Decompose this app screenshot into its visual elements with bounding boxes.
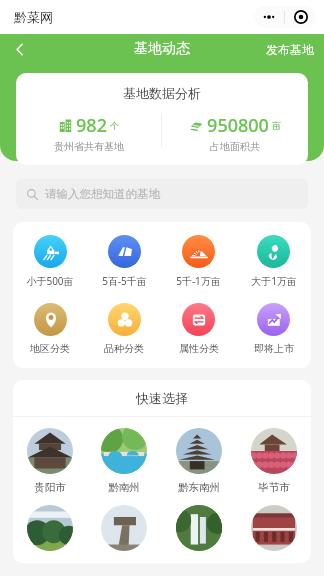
staticText: 贵阳市 <box>34 481 66 494</box>
staticText: 即将上市 <box>254 342 294 355</box>
staticText: 占地面积共 <box>210 140 260 153</box>
button[interactable]: 黔南州 <box>87 428 161 494</box>
button[interactable]: 5千-1万亩 <box>161 235 236 288</box>
staticText: 黔南州 <box>108 481 140 494</box>
staticText: 属性分类 <box>179 342 219 355</box>
button[interactable]: 贵阳市 <box>13 428 87 494</box>
staticText: 950800 <box>207 113 269 138</box>
staticText: 基地数据分析 <box>123 85 201 101</box>
staticText: 发布基地 <box>266 42 314 57</box>
staticText: 地区分类 <box>30 342 70 355</box>
button[interactable]: More options <box>254 6 284 28</box>
button[interactable]: 黔东南州 <box>161 428 236 494</box>
button[interactable]: Close <box>285 6 316 28</box>
staticText: 基地动态 <box>134 40 190 58</box>
button[interactable]: 发布基地 <box>266 42 314 57</box>
button[interactable]: 大于1万亩 <box>236 235 311 288</box>
staticText: 个 <box>110 120 119 131</box>
staticText: 小于500亩 <box>26 274 74 288</box>
button[interactable]: 地区分类 <box>13 303 87 355</box>
staticText: 黔东南州 <box>178 481 220 494</box>
button[interactable]: 5百-5千亩 <box>87 235 161 288</box>
button[interactable]: Back <box>5 35 33 63</box>
staticText: 快速选择 <box>136 390 188 406</box>
staticText: 黔菜网 <box>14 9 53 25</box>
button[interactable]: Region <box>236 505 311 551</box>
staticText: 亩 <box>272 120 281 131</box>
button[interactable]: Region <box>161 505 236 551</box>
staticText: 982 <box>76 113 107 138</box>
button[interactable]: 请输入您想知道的基地 <box>16 179 308 209</box>
staticText: 5百-5千亩 <box>102 274 147 288</box>
staticText: 毕节市 <box>258 481 290 494</box>
button[interactable]: Region <box>13 505 87 551</box>
staticText: 大于1万亩 <box>251 274 297 288</box>
button[interactable]: 小于500亩 <box>13 235 87 288</box>
button[interactable]: 毕节市 <box>236 428 311 494</box>
button[interactable]: 属性分类 <box>161 303 236 355</box>
staticText: 品种分类 <box>104 342 144 355</box>
button[interactable]: Region <box>87 505 161 551</box>
button[interactable]: 品种分类 <box>87 303 161 355</box>
staticText: 5千-1万亩 <box>176 274 221 288</box>
staticText: 请输入您想知道的基地 <box>45 187 160 201</box>
button[interactable]: 即将上市 <box>236 303 311 355</box>
staticText: 贵州省共有基地 <box>54 140 124 153</box>
